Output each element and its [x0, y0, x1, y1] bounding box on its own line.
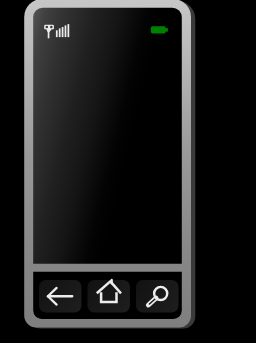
button[interactable]: Mobile phone illustration — [0, 0, 256, 343]
